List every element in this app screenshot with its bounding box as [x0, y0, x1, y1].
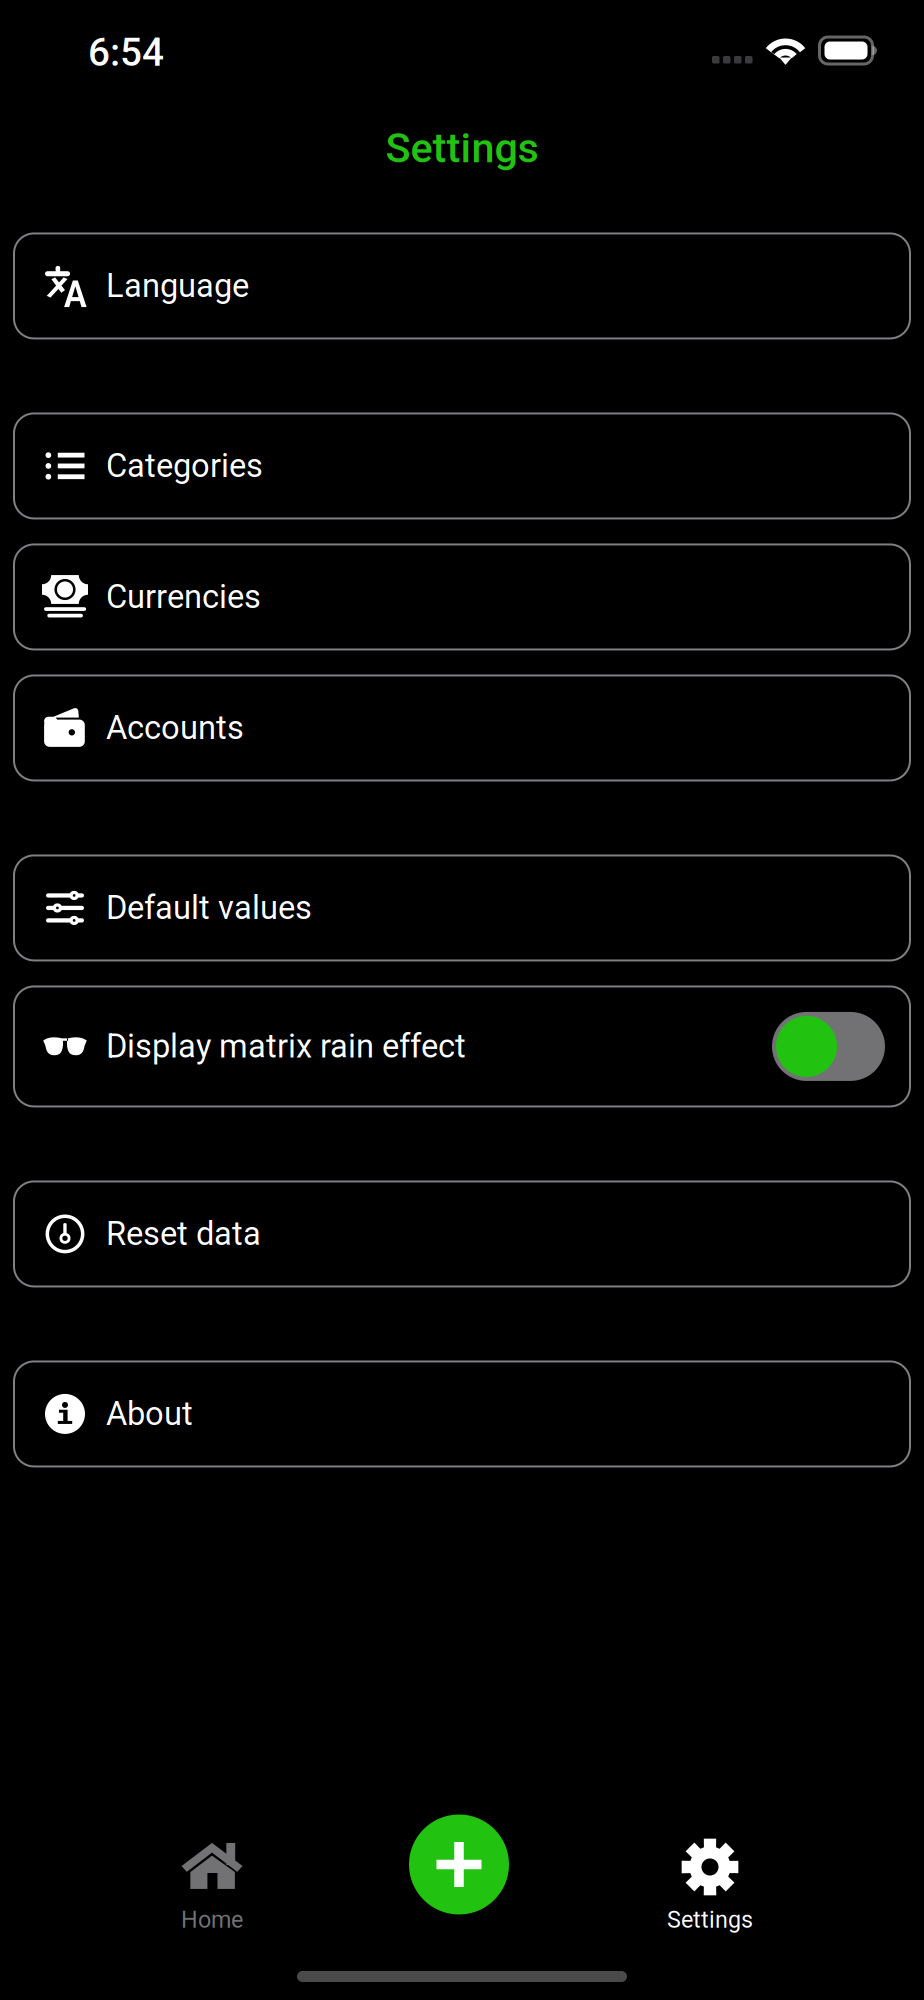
staticText: Categories [106, 447, 263, 485]
button[interactable]: Language [14, 233, 910, 338]
staticText: Currencies [106, 578, 261, 616]
staticText: Language [106, 267, 249, 305]
button[interactable]: Add transaction [409, 1814, 509, 1914]
button[interactable]: Categories [14, 413, 910, 518]
staticText: Reset data [106, 1215, 261, 1253]
staticText: Settings [385, 124, 538, 172]
button[interactable]: Display matrix rain effect [14, 986, 910, 1106]
button[interactable]: About [14, 1361, 910, 1466]
button[interactable]: Home [102, 1838, 322, 2000]
button[interactable]: Settings [600, 1838, 820, 2000]
staticText: Home [181, 1906, 243, 1933]
staticText: Display matrix rain effect [106, 1027, 466, 1066]
staticText: Accounts [106, 709, 244, 747]
button[interactable]: Reset data [14, 1181, 910, 1286]
staticText: Settings [667, 1906, 753, 1933]
staticText: 6:54 [88, 30, 164, 75]
staticText: About [106, 1395, 193, 1433]
staticText: Default values [106, 889, 312, 927]
button[interactable]: Currencies [14, 544, 910, 649]
button[interactable]: Default values [14, 855, 910, 960]
button[interactable]: Display matrix rain effect [772, 1012, 885, 1081]
button[interactable]: Accounts [14, 675, 910, 780]
